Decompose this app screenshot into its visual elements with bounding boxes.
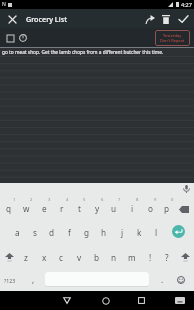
button[interactable]: Yesterday bbox=[155, 30, 190, 46]
staticText: ! bbox=[149, 252, 152, 263]
staticText: z bbox=[24, 252, 28, 263]
staticText: x bbox=[42, 252, 47, 263]
staticText: s bbox=[33, 227, 37, 238]
staticText: g bbox=[84, 227, 90, 238]
staticText: p bbox=[164, 203, 170, 214]
staticText: 3 bbox=[48, 197, 51, 203]
button[interactable] bbox=[174, 10, 192, 28]
staticText: h bbox=[101, 227, 107, 238]
button[interactable] bbox=[7, 35, 14, 42]
button[interactable] bbox=[179, 206, 189, 213]
button[interactable] bbox=[5, 253, 14, 261]
staticText: 2 bbox=[30, 197, 33, 203]
staticText: m bbox=[128, 252, 136, 263]
button[interactable] bbox=[142, 11, 158, 27]
staticText: n bbox=[111, 252, 117, 263]
button[interactable] bbox=[181, 253, 190, 261]
button[interactable] bbox=[177, 276, 185, 284]
staticText: i bbox=[131, 203, 134, 214]
staticText: b bbox=[94, 252, 100, 263]
staticText: q bbox=[6, 203, 12, 214]
staticText: 4:27 bbox=[181, 1, 192, 8]
staticText: 4 bbox=[66, 197, 69, 203]
button[interactable] bbox=[175, 297, 185, 304]
staticText: , bbox=[32, 274, 35, 285]
staticText: 5 bbox=[83, 197, 86, 203]
staticText: v bbox=[77, 252, 82, 263]
staticText: c bbox=[59, 252, 63, 263]
button[interactable] bbox=[6, 13, 18, 25]
staticText: k bbox=[137, 227, 142, 238]
button[interactable] bbox=[102, 297, 110, 305]
staticText: Don't Repeat bbox=[160, 38, 185, 43]
staticText: 0 bbox=[171, 197, 174, 203]
staticText: d bbox=[49, 227, 55, 238]
staticText: go to meat shop. Get the lamb chops from… bbox=[2, 49, 164, 56]
staticText: N bbox=[2, 1, 6, 8]
staticText: 1 bbox=[13, 197, 16, 203]
staticText: ?123 bbox=[4, 277, 16, 284]
staticText: j bbox=[121, 227, 124, 238]
staticText: 9 bbox=[154, 197, 157, 203]
staticText: Yesterday bbox=[163, 33, 182, 38]
staticText: 8 bbox=[136, 197, 139, 203]
staticText: o bbox=[148, 203, 153, 214]
staticText: f bbox=[68, 227, 71, 238]
button[interactable] bbox=[63, 297, 71, 304]
button[interactable] bbox=[45, 272, 149, 287]
staticText: 7 bbox=[118, 197, 121, 203]
staticText: 6 bbox=[101, 197, 104, 203]
staticText: a bbox=[15, 227, 20, 238]
staticText: e bbox=[42, 203, 47, 214]
staticText: w bbox=[23, 203, 30, 214]
button[interactable] bbox=[19, 34, 27, 42]
staticText: u bbox=[111, 203, 117, 214]
staticText: r bbox=[60, 203, 64, 214]
staticText: . bbox=[161, 274, 164, 285]
staticText: y bbox=[95, 203, 100, 214]
staticText: l bbox=[155, 227, 158, 238]
staticText: t bbox=[78, 203, 81, 214]
button[interactable] bbox=[172, 225, 185, 238]
button[interactable] bbox=[138, 297, 145, 304]
staticText: ? bbox=[165, 252, 169, 263]
staticText: Grocery List bbox=[26, 14, 67, 24]
button[interactable] bbox=[158, 11, 174, 27]
